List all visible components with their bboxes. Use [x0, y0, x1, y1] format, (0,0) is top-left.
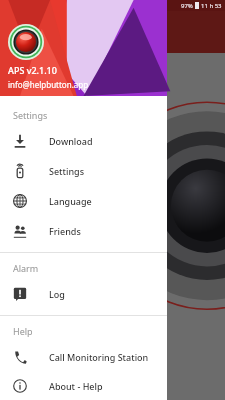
staticText: Log — [49, 288, 65, 300]
staticText: info@helpbutton.app — [8, 79, 89, 90]
staticText: 97% — [181, 2, 193, 10]
staticText: Friends — [49, 225, 81, 237]
staticText: APS v2.1.10 — [8, 64, 57, 76]
staticText: 11 h 53 — [201, 2, 222, 10]
button[interactable]: Log — [0, 279, 167, 309]
button[interactable]: Call Monitoring Station — [0, 342, 167, 372]
staticText: Language — [49, 195, 92, 207]
button[interactable]: Friends — [0, 216, 167, 246]
staticText: Call Monitoring Station — [49, 351, 149, 363]
staticText: Alarm — [13, 262, 39, 274]
button[interactable]: Settings — [0, 156, 167, 186]
staticText: Settings — [49, 165, 85, 177]
staticText: Help — [13, 325, 33, 337]
staticText: Download — [49, 135, 93, 147]
staticText: Settings — [13, 109, 48, 121]
staticText: About - Help — [49, 380, 103, 392]
button[interactable]: About - Help — [0, 372, 167, 400]
button[interactable]: Download — [0, 126, 167, 156]
button[interactable]: Language — [0, 186, 167, 216]
